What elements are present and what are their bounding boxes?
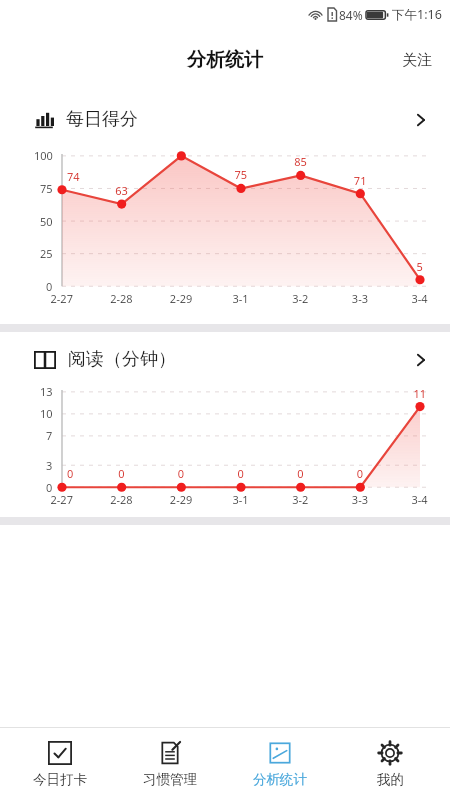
staticText: 下午1:16 xyxy=(392,6,442,23)
staticText: 分析统计 xyxy=(187,48,263,72)
staticText: 分析统计 xyxy=(253,771,307,788)
staticText: 每日得分 xyxy=(66,108,138,131)
button[interactable]: 习惯管理 xyxy=(120,735,220,794)
staticText: 阅读（分钟） xyxy=(68,348,176,371)
button[interactable]: 今日打卡 xyxy=(10,735,110,794)
staticText: 关注 xyxy=(402,51,432,70)
button[interactable]: 关注 xyxy=(384,41,450,80)
staticText: 今日打卡 xyxy=(33,771,87,788)
button[interactable]: 每日得分 xyxy=(0,92,450,141)
button[interactable]: 分析统计 xyxy=(230,735,330,794)
button[interactable]: 阅读（分钟） xyxy=(0,332,450,381)
button[interactable]: 我的 xyxy=(340,735,440,794)
other: 查看详情 xyxy=(410,109,432,131)
other: 查看详情 xyxy=(410,349,432,371)
staticText: 习惯管理 xyxy=(143,771,197,788)
staticText: 84% xyxy=(339,7,363,23)
staticText: 我的 xyxy=(377,771,404,788)
